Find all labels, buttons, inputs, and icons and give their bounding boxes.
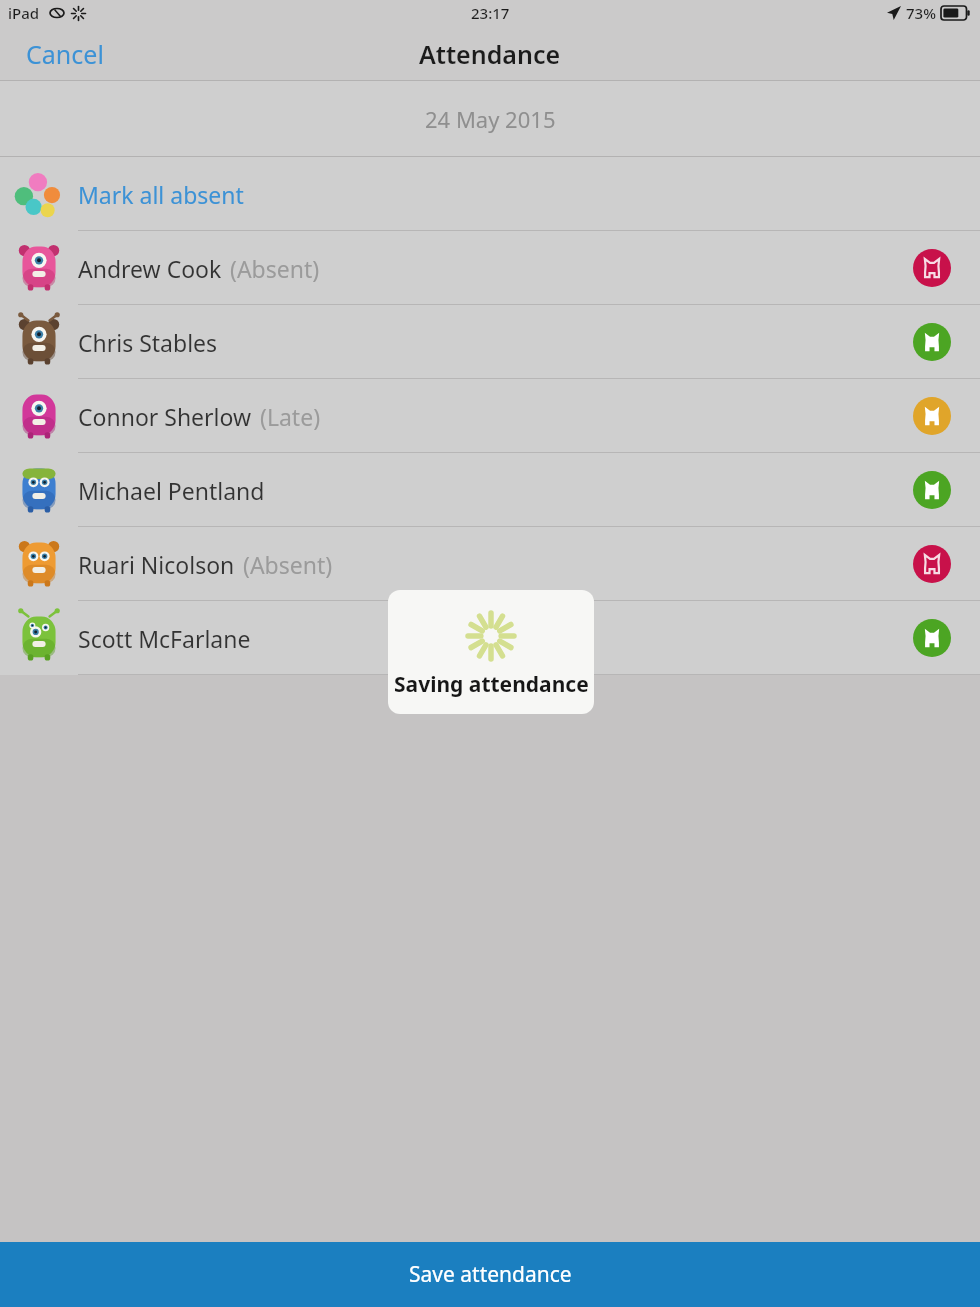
staticText: 24 May 2015: [425, 104, 556, 134]
button[interactable]: Save attendance: [0, 1242, 980, 1307]
button[interactable]: PRESENT: [913, 323, 951, 361]
button[interactable]: Cancel: [10, 28, 120, 80]
staticText: 73%: [906, 3, 936, 23]
button[interactable]: PRESENT: [913, 471, 951, 509]
staticText: Andrew Cook: [78, 253, 222, 284]
button[interactable]: Mark all absent: [0, 157, 980, 231]
staticText: Ruari Nicolson: [78, 549, 235, 580]
button[interactable]: Chris Stables: [0, 305, 980, 379]
button[interactable]: Scott McFarlane: [0, 601, 980, 675]
staticText: (Late): [260, 401, 321, 432]
staticText: Mark all absent: [78, 179, 244, 210]
staticText: (Absent): [230, 253, 320, 284]
button[interactable]: Michael Pentland: [0, 453, 980, 527]
button[interactable]: Andrew Cook: [0, 231, 980, 305]
button[interactable]: Connor Sherlow: [0, 379, 980, 453]
staticText: Attendance: [419, 37, 561, 71]
button[interactable]: ABSENT: [913, 249, 951, 287]
staticText: iPad: [8, 3, 40, 23]
button[interactable]: PRESENT: [913, 619, 951, 657]
staticText: Save attendance: [409, 1260, 572, 1289]
staticText: Connor Sherlow: [78, 401, 252, 432]
staticText: 23:17: [471, 3, 510, 23]
staticText: Cancel: [26, 37, 104, 71]
staticText: Scott McFarlane: [78, 623, 251, 654]
staticText: Chris Stables: [78, 327, 218, 358]
staticText: Michael Pentland: [78, 475, 265, 506]
staticText: (Absent): [243, 549, 333, 580]
staticText: Saving attendance: [394, 670, 589, 699]
button[interactable]: ABSENT: [913, 545, 951, 583]
button[interactable]: Ruari Nicolson: [0, 527, 980, 601]
button[interactable]: LATE: [913, 397, 951, 435]
